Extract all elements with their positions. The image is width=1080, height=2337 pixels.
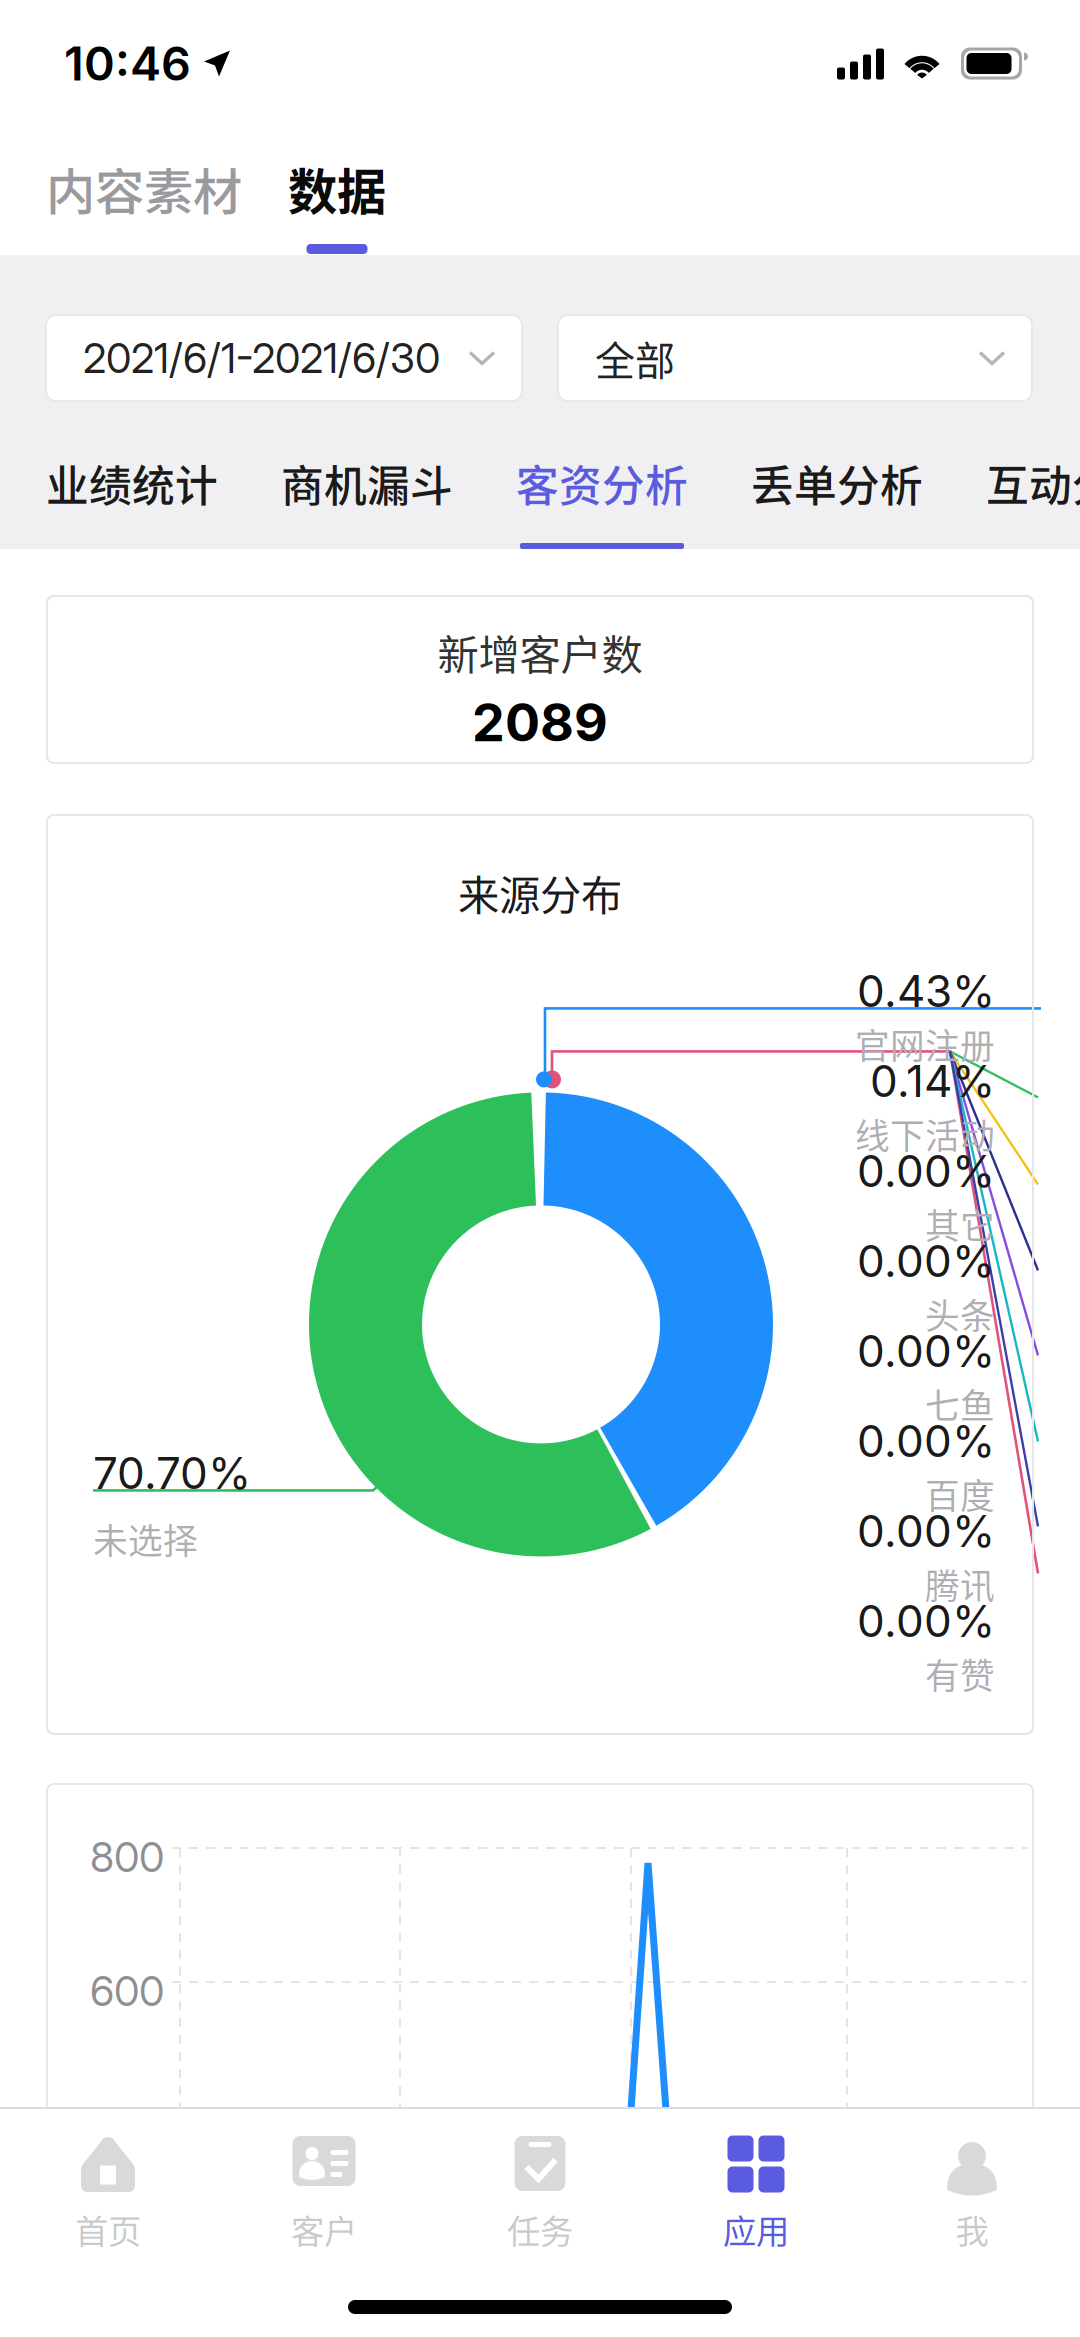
staticText: 未选择 — [93, 1514, 198, 1564]
staticText: 0.00% — [857, 1504, 995, 1558]
staticText: 0.43% — [857, 964, 995, 1018]
button[interactable]: 客户 — [216, 2109, 432, 2261]
staticText: 有赞 — [925, 1649, 995, 1699]
staticText: 10:46 — [64, 35, 191, 92]
staticText: 2089 — [472, 691, 608, 754]
staticText: 线下活动 — [855, 1109, 995, 1159]
button[interactable]: 丢单分析 — [751, 452, 923, 549]
staticText: 0.00% — [857, 1324, 995, 1378]
staticText: 丢单分析 — [751, 452, 923, 514]
staticText: 商机漏斗 — [281, 452, 453, 514]
staticText: 其它 — [925, 1199, 995, 1249]
button[interactable]: 全部 — [558, 315, 1032, 401]
staticText: 应用 — [723, 2205, 789, 2253]
staticText: 腾讯 — [925, 1559, 995, 1609]
staticText: 业绩统计 — [46, 452, 218, 514]
staticText: 新增客户数 — [437, 622, 642, 682]
staticText: 百度 — [925, 1469, 995, 1519]
button[interactable]: 首页 — [0, 2109, 216, 2261]
staticText: 0.14% — [870, 1054, 995, 1108]
button[interactable]: 2021/6/1-2021/6/30 — [46, 315, 522, 401]
staticText: 客资分析 — [516, 452, 688, 514]
staticText: 互动分析 — [986, 452, 1080, 514]
staticText: 0.00% — [857, 1594, 995, 1648]
button[interactable]: 我 — [864, 2109, 1080, 2261]
staticText: 数据 — [288, 153, 386, 224]
staticText: 0.00% — [857, 1234, 995, 1288]
button[interactable]: 业绩统计 — [46, 452, 218, 549]
staticText: 来源分布 — [458, 863, 622, 922]
staticText: 400 — [90, 2100, 166, 2150]
staticText: 我 — [955, 2205, 988, 2253]
staticText: 800 — [90, 1832, 164, 1882]
button[interactable]: 数据 — [288, 153, 386, 254]
staticText: 七鱼 — [925, 1379, 995, 1429]
button[interactable]: 内容素材 — [46, 153, 242, 254]
staticText: 官网注册 — [855, 1019, 995, 1069]
staticText: 2021/6/1-2021/6/30 — [83, 333, 440, 383]
staticText: 70.70% — [93, 1446, 251, 1500]
staticText: 任务 — [507, 2205, 573, 2253]
staticText: 头条 — [925, 1289, 995, 1339]
staticText: 全部 — [595, 329, 675, 387]
staticText: 内容素材 — [46, 153, 242, 224]
button[interactable]: 商机漏斗 — [281, 452, 453, 549]
button[interactable]: 应用 — [648, 2109, 864, 2261]
button[interactable]: 客资分析 — [516, 452, 688, 549]
button[interactable]: 互动分析 — [986, 452, 1080, 549]
button[interactable]: 任务 — [432, 2109, 648, 2261]
staticText: 首页 — [75, 2205, 141, 2253]
staticText: 600 — [90, 1966, 164, 2016]
staticText: 0.00% — [857, 1144, 995, 1198]
staticText: 0.00% — [857, 1414, 995, 1468]
staticText: 客户 — [291, 2205, 357, 2253]
